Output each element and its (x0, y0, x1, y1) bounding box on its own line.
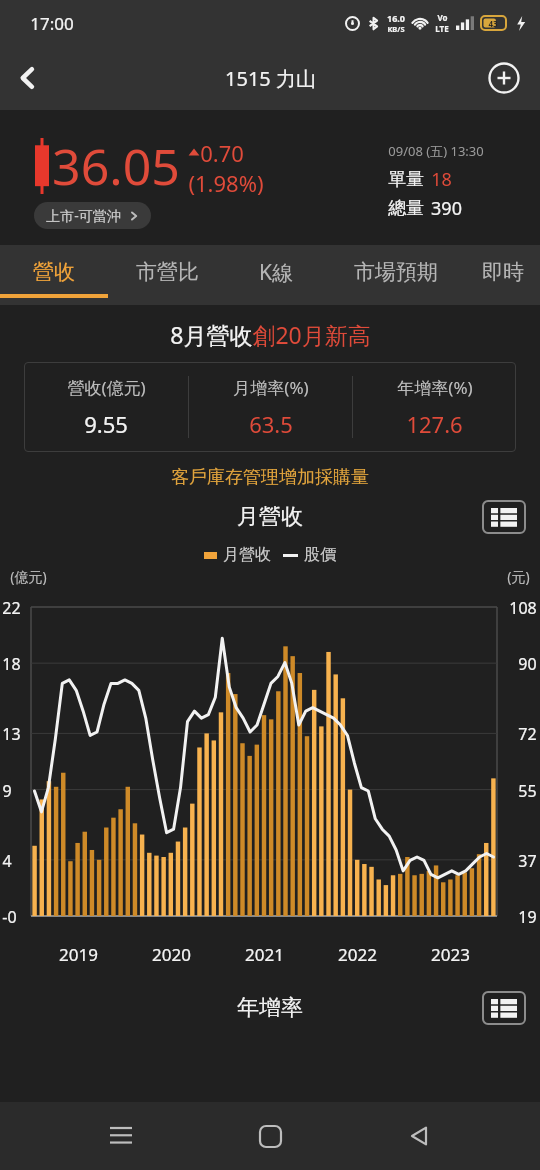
staticText: Vo (437, 12, 448, 23)
staticText: 72 (518, 723, 537, 745)
staticText: 2019 (59, 943, 98, 966)
button[interactable]: 上市-可當沖 (34, 202, 151, 229)
button[interactable]: Add to watchlist (484, 58, 524, 98)
staticText: 390 (431, 196, 462, 221)
staticText: (1.98%) (188, 168, 264, 198)
staticText: (元) (507, 567, 530, 586)
staticText: 63.5 (249, 409, 293, 439)
staticText: 客戶庫存管理增加採購量 (171, 466, 369, 489)
staticText: K線 (259, 258, 293, 287)
button[interactable]: 市營比 (108, 245, 226, 305)
staticText: 年增率 (237, 994, 303, 1022)
staticText: 22 (2, 597, 21, 619)
button[interactable]: Show data table (482, 991, 526, 1025)
staticText: 18 (2, 653, 21, 675)
staticText: 13 (2, 723, 21, 745)
button[interactable]: 即時 (466, 245, 540, 305)
button[interactable]: Back (391, 1108, 447, 1164)
staticText: 9 (2, 780, 12, 802)
button[interactable]: 市場預期 (326, 245, 466, 305)
staticText: 營收 (33, 259, 75, 285)
staticText: 36.05 (52, 132, 180, 200)
staticText: 9.55 (84, 409, 128, 439)
button[interactable]: Show data table (482, 500, 526, 534)
button[interactable]: 客戶庫存管理增加採購量 (0, 466, 540, 489)
staticText: 16.0 (387, 12, 405, 24)
staticText: 月增率(%) (233, 376, 309, 399)
staticText: -0 (2, 906, 17, 928)
staticText: KB/S (387, 24, 405, 34)
staticText: 8月營收創20月新高 (170, 319, 371, 350)
button[interactable]: 月增率(%) (189, 362, 352, 452)
staticText: 09/08 (五) 13:30 (388, 142, 484, 160)
staticText: 55 (518, 780, 537, 802)
staticText: 股價 (304, 545, 336, 565)
staticText: LTE (435, 23, 449, 34)
staticText: 單量 (388, 168, 424, 191)
button[interactable]: Back (0, 50, 56, 106)
staticText: 即時 (482, 259, 524, 285)
staticText: 4 (2, 850, 12, 872)
staticText: (億元) (10, 567, 47, 586)
button[interactable]: Home (242, 1108, 298, 1164)
staticText: 2021 (245, 943, 284, 966)
staticText: 19 (518, 906, 537, 928)
button[interactable]: Recent apps (93, 1108, 149, 1164)
staticText: 2020 (152, 943, 191, 966)
staticText: 108 (509, 597, 537, 619)
staticText: 市場預期 (354, 259, 438, 285)
staticText: 年增率(%) (397, 376, 473, 399)
button[interactable]: K線 (226, 245, 326, 305)
button[interactable]: 年增率(%) (353, 362, 516, 452)
staticText: 總量 (388, 197, 424, 220)
staticText: 上市-可當沖 (46, 206, 121, 225)
staticText: 月營收 (223, 545, 271, 565)
staticText: 0.70 (200, 138, 244, 168)
staticText: 90 (518, 653, 537, 675)
staticText: 43 (488, 18, 498, 29)
staticText: 37 (518, 850, 537, 872)
button[interactable]: 營收 (0, 245, 108, 305)
staticText: 127.6 (406, 409, 463, 439)
button[interactable]: 營收(億元) (24, 362, 188, 452)
staticText: 1515 力山 (225, 65, 316, 92)
staticText: 營收(億元) (67, 376, 146, 399)
staticText: 2023 (431, 943, 470, 966)
staticText: 市營比 (136, 259, 199, 285)
staticText: 2022 (338, 943, 377, 966)
staticText: 17:00 (30, 12, 74, 35)
staticText: 月營收 (237, 503, 303, 531)
staticText: 18 (431, 167, 452, 192)
